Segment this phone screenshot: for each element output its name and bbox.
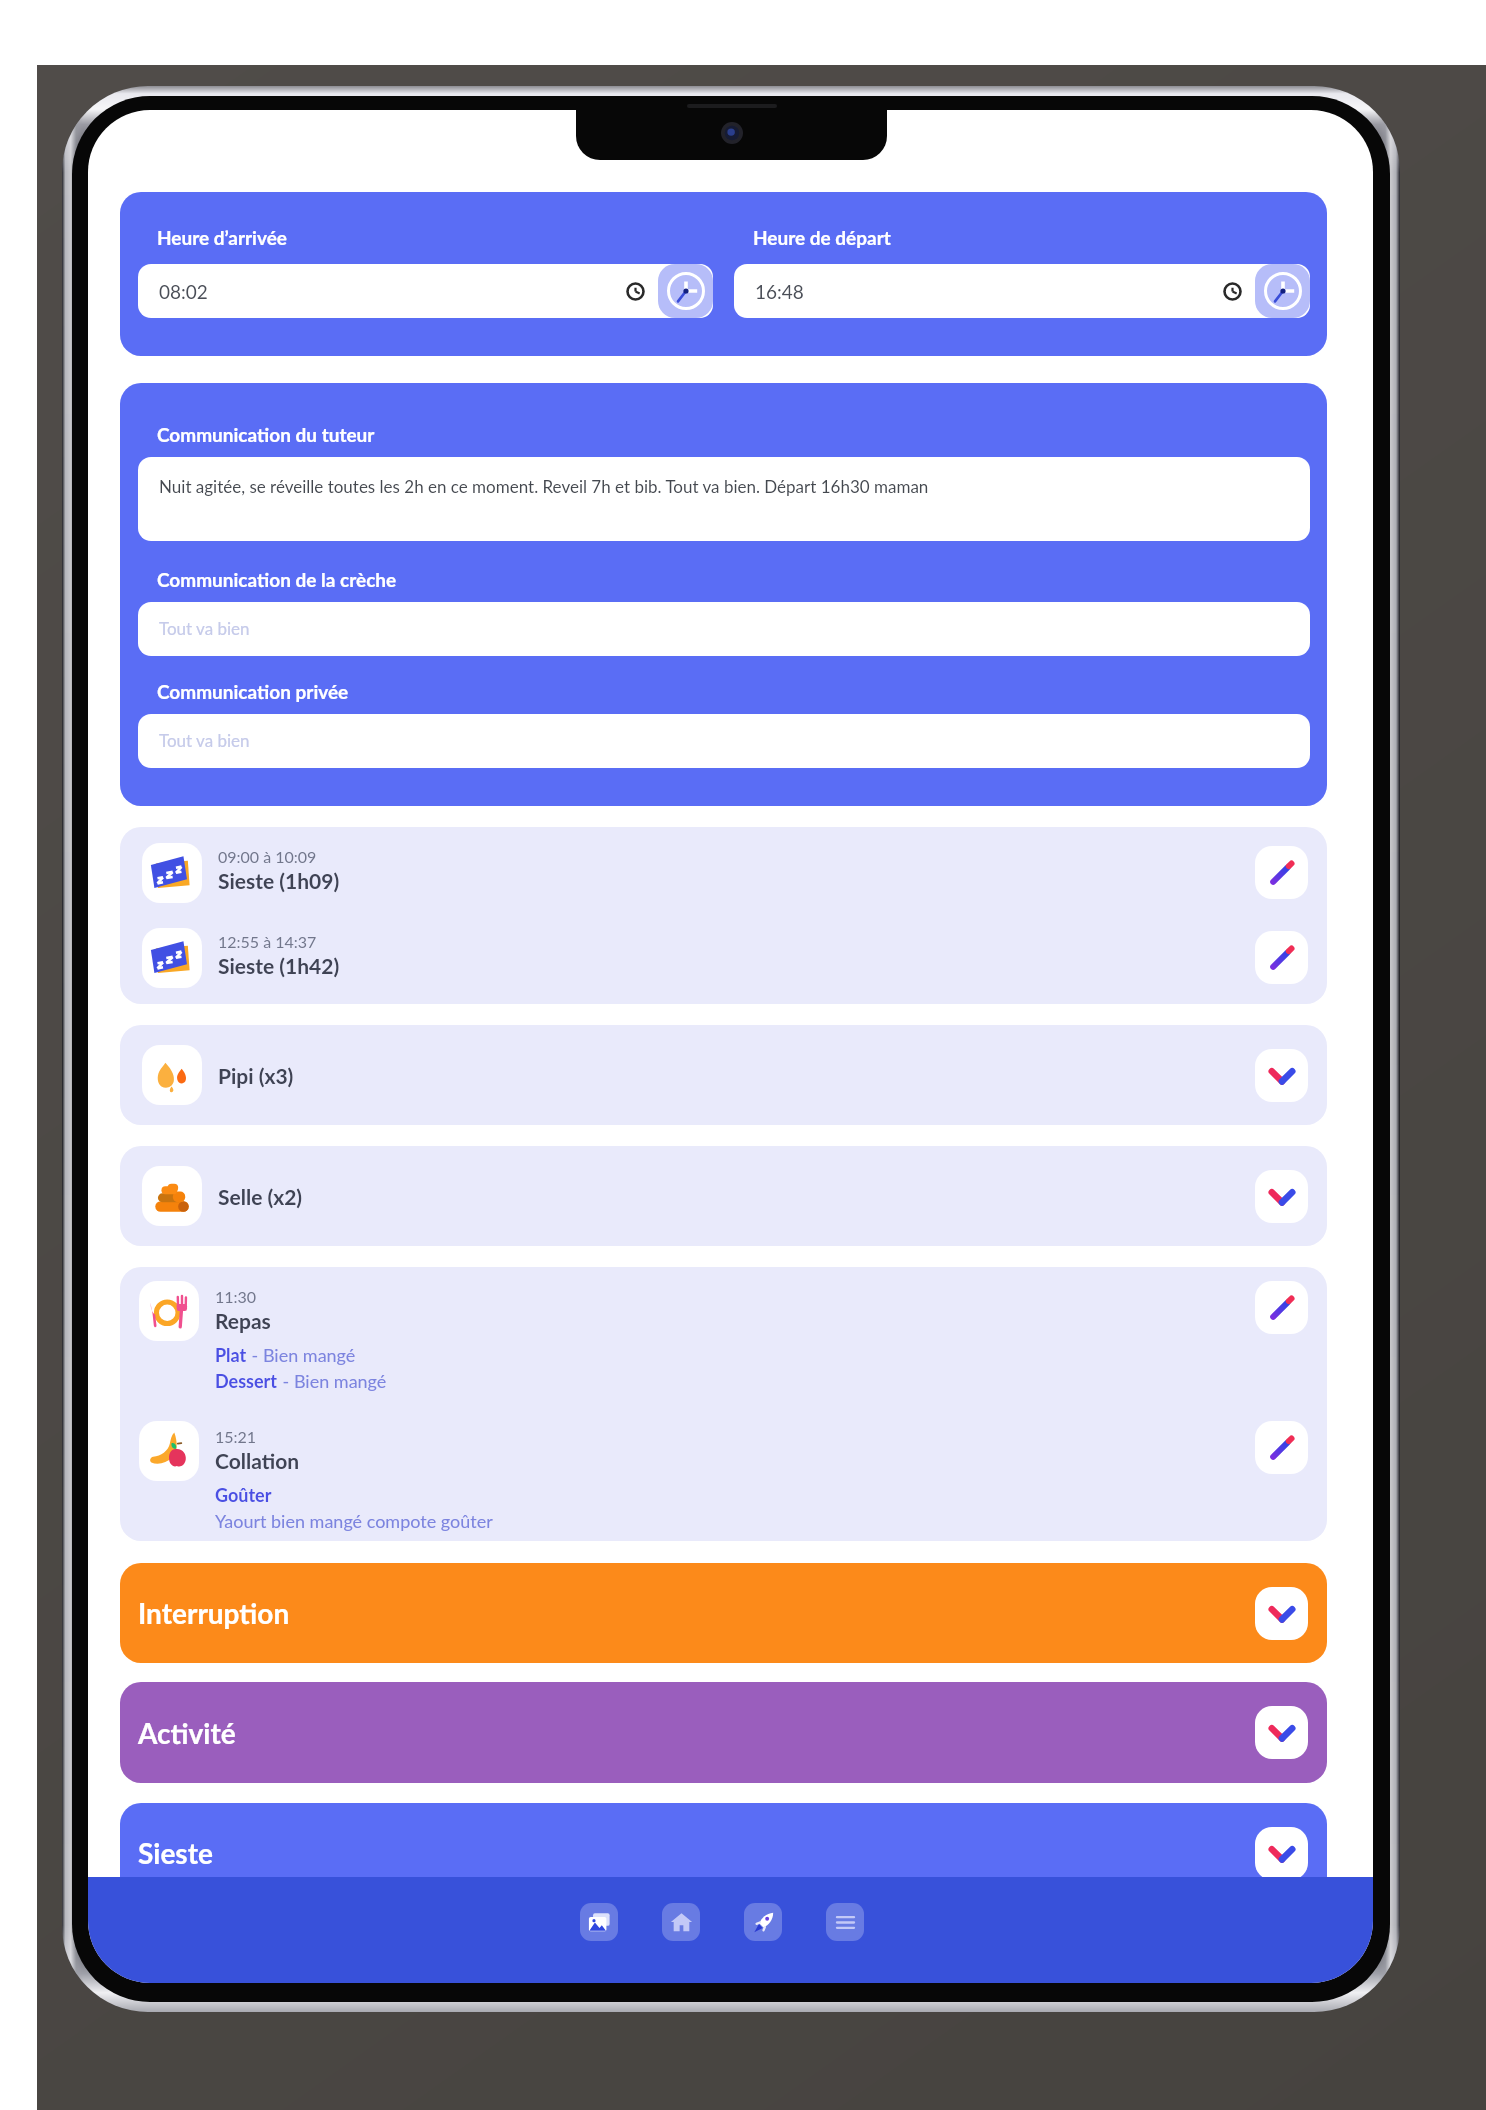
button[interactable]: Selle (x2) — [142, 1146, 1308, 1246]
button[interactable]: Expand — [1255, 1827, 1308, 1880]
button[interactable]: Edit — [1255, 846, 1308, 899]
staticText: 12:55 à 14:37 — [218, 932, 317, 951]
button[interactable]: Expand — [1255, 1706, 1308, 1759]
button[interactable]: Expand — [1255, 1170, 1308, 1223]
staticText: Goûter — [215, 1484, 272, 1506]
staticText: 08:02 — [159, 280, 208, 303]
staticText: Activité — [138, 1716, 1255, 1750]
button[interactable]: Edit — [1255, 1281, 1308, 1334]
staticText: Communication du tuteur — [157, 423, 375, 446]
staticText: Communication privée — [157, 680, 349, 703]
staticText: Sieste (1h42) — [218, 953, 340, 978]
button[interactable]: Nuit agitée, se réveille toutes les 2h e… — [138, 457, 1310, 541]
button[interactable]: Edit — [1255, 931, 1308, 984]
button[interactable]: Expand — [1255, 1587, 1308, 1640]
button[interactable]: Tout va bien — [138, 602, 1310, 656]
button[interactable]: Pick time — [658, 264, 713, 318]
button[interactable]: 08:02 — [138, 264, 713, 318]
button[interactable]: Gallery — [580, 1903, 618, 1941]
staticText: Tout va bien — [159, 730, 250, 750]
button[interactable]: Menu — [826, 1903, 864, 1941]
staticText: Heure d’arrivée — [157, 226, 287, 249]
staticText: Plat — [215, 1344, 247, 1366]
button[interactable]: 16:48 — [734, 264, 1310, 318]
button[interactable]: 15:21 — [139, 1407, 1308, 1541]
staticText: Dessert — [215, 1370, 278, 1392]
staticText: Yaourt bien mangé compote goûter — [215, 1510, 493, 1532]
staticText: Nuit agitée, se réveille toutes les 2h e… — [159, 476, 929, 496]
staticText: Sieste — [138, 1836, 1255, 1870]
staticText: 16:48 — [755, 280, 804, 303]
button[interactable]: Activité — [138, 1682, 1308, 1783]
button[interactable]: Tout va bien — [138, 714, 1310, 768]
button[interactable]: Pick time — [1255, 264, 1310, 318]
staticText: 11:30 — [215, 1287, 257, 1306]
staticText: Heure de départ — [753, 226, 891, 249]
staticText: Repas — [215, 1308, 271, 1333]
staticText: 15:21 — [215, 1427, 257, 1446]
button[interactable]: Pipi (x3) — [142, 1025, 1308, 1125]
staticText: - Bien mangé — [278, 1370, 387, 1392]
staticText: Sieste (1h09) — [218, 868, 340, 893]
staticText: Selle (x2) — [218, 1184, 1255, 1209]
button[interactable]: Home — [662, 1903, 700, 1941]
button[interactable]: Expand — [1255, 1049, 1308, 1102]
staticText: Pipi (x3) — [218, 1063, 1255, 1088]
staticText: Communication de la crèche — [157, 568, 397, 591]
button[interactable]: Interruption — [138, 1563, 1308, 1663]
staticText: Collation — [215, 1448, 300, 1473]
button[interactable]: Activities — [744, 1903, 782, 1941]
button[interactable]: Sieste — [138, 1803, 1308, 1903]
button[interactable]: Edit — [1255, 1421, 1308, 1474]
button[interactable]: 11:30 — [139, 1267, 1308, 1407]
button[interactable]: 09:00 à 10:09 — [142, 830, 1308, 915]
staticText: Tout va bien — [159, 618, 250, 638]
button[interactable]: 12:55 à 14:37 — [142, 915, 1308, 1000]
staticText: Interruption — [138, 1596, 1255, 1630]
staticText: 09:00 à 10:09 — [218, 847, 317, 866]
staticText: - Bien mangé — [247, 1344, 356, 1366]
